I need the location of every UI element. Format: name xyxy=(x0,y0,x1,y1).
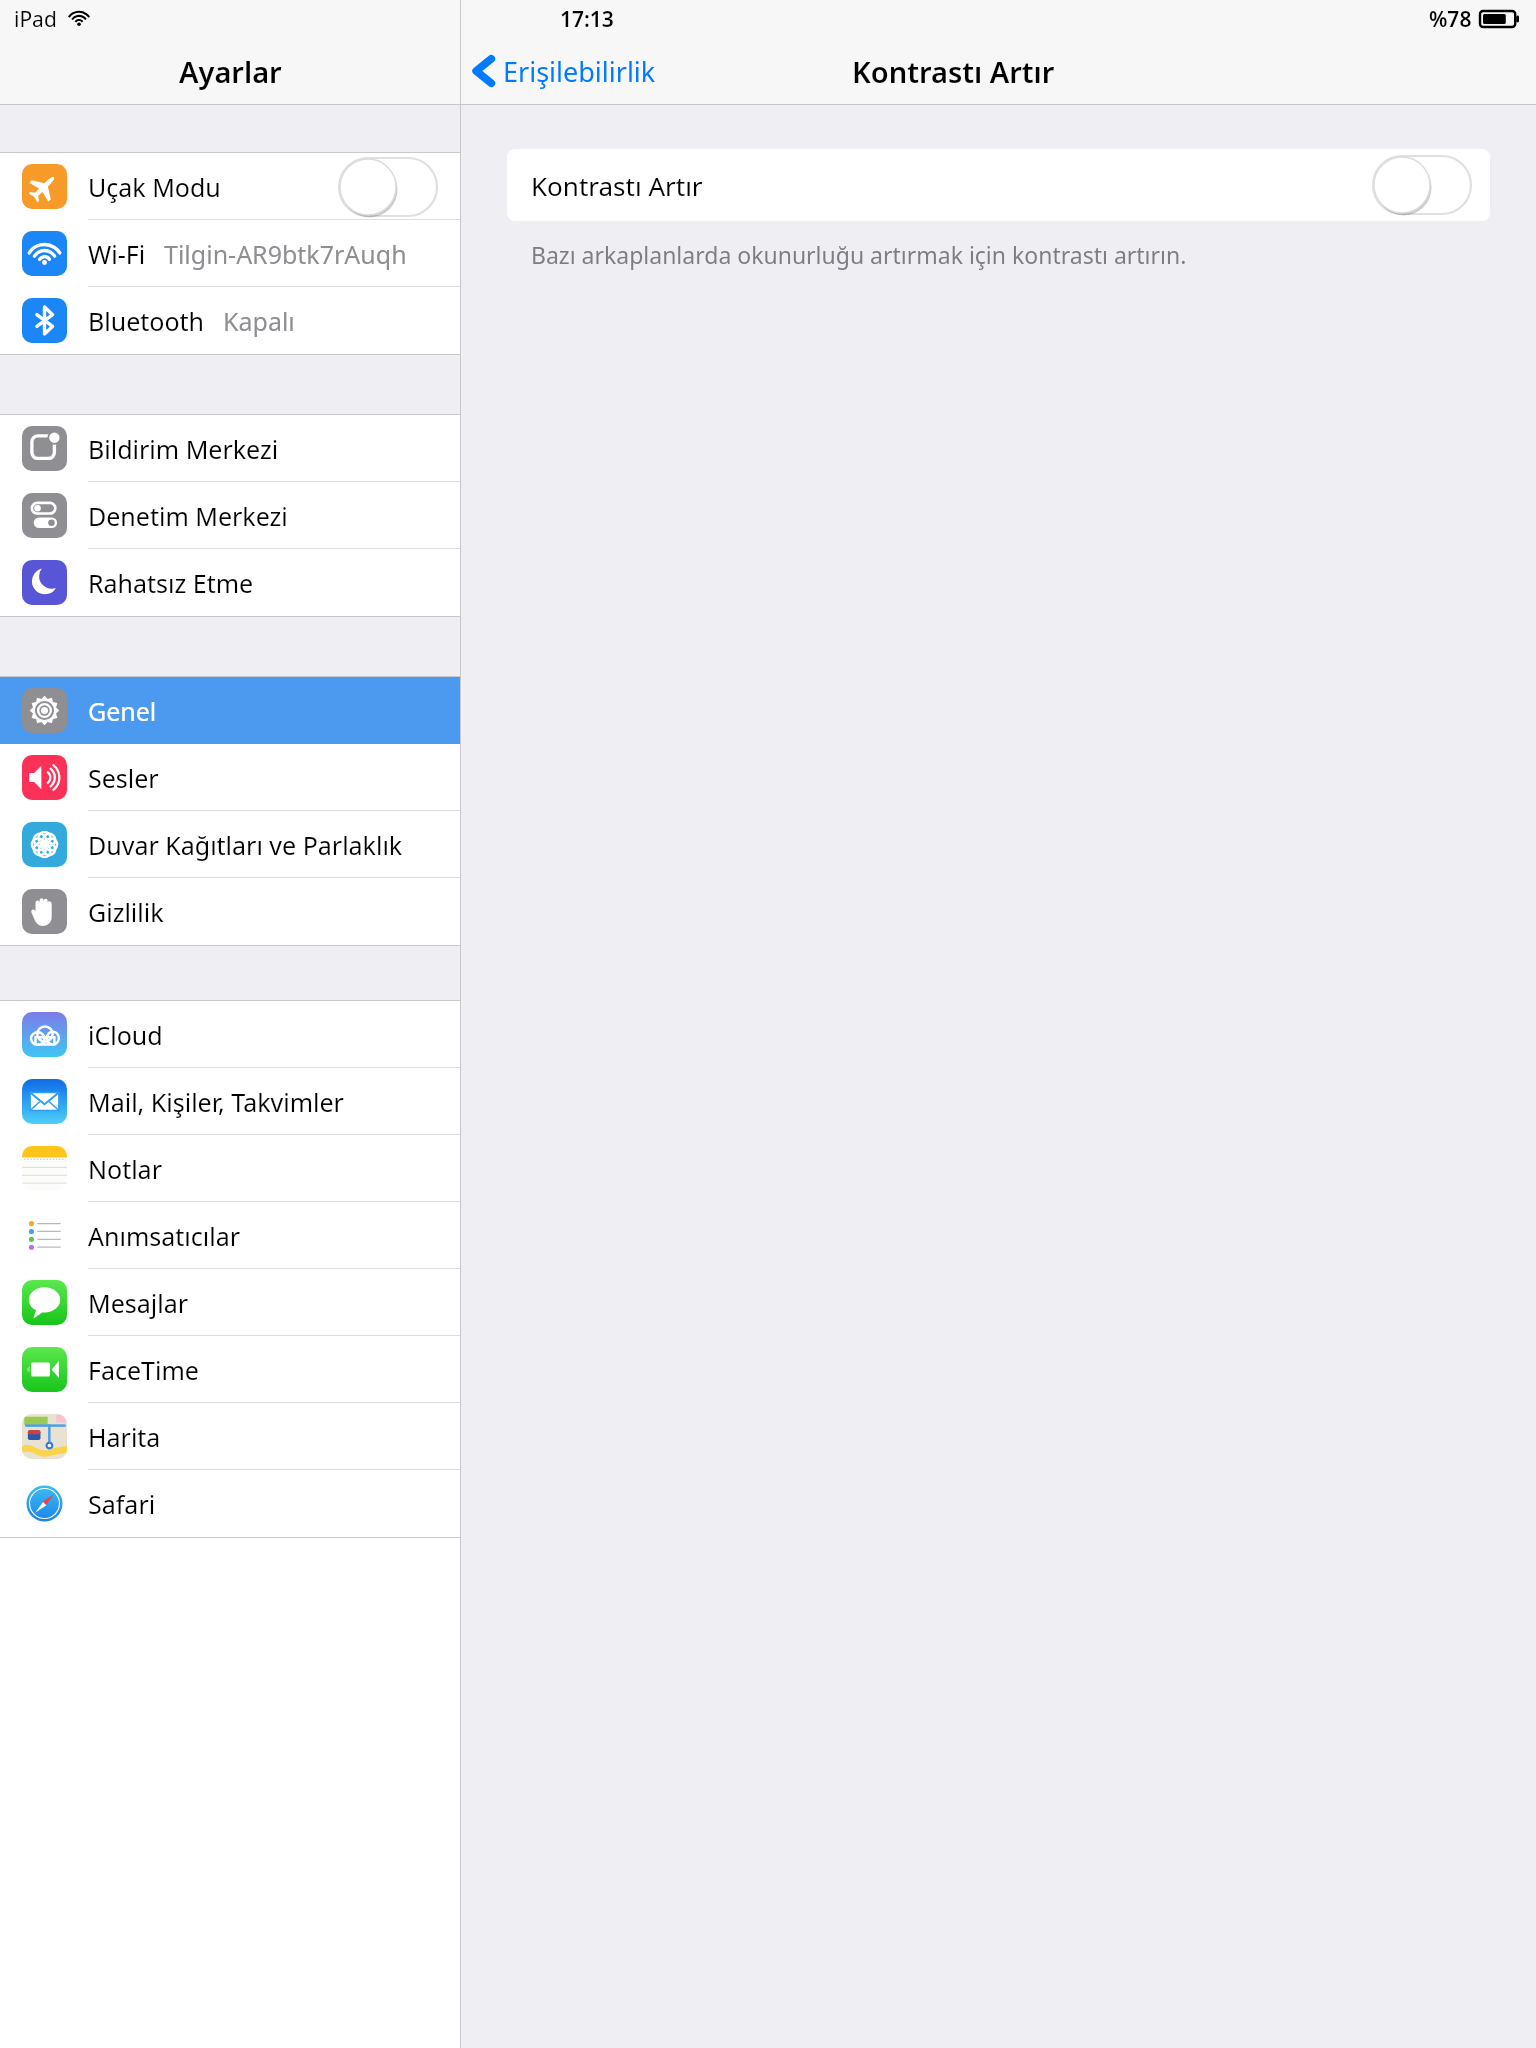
staticText: Denetim Merkezi xyxy=(88,499,288,533)
button[interactable]: Mail, Kişiler, Takvimler xyxy=(0,1068,460,1135)
staticText: Rahatsız Etme xyxy=(88,566,254,600)
button[interactable]: Toggle xyxy=(338,157,438,217)
staticText: Tilgin-AR9btk7rAuqh xyxy=(164,237,407,271)
button[interactable]: Bildirim Merkezi xyxy=(0,415,460,482)
button[interactable]: Harita xyxy=(0,1403,460,1470)
staticText: Gizlilik xyxy=(88,895,164,929)
button[interactable]: Erişilebilirlik xyxy=(471,38,656,104)
staticText: Kontrastı Artır xyxy=(531,168,703,203)
staticText: Kontrastı Artır xyxy=(852,52,1055,91)
staticText: iCloud xyxy=(88,1018,163,1052)
staticText: Genel xyxy=(88,694,157,728)
button[interactable]: Gizlilik xyxy=(0,878,460,945)
button[interactable]: Safari xyxy=(0,1470,460,1537)
button[interactable]: Toggle xyxy=(1372,155,1472,215)
staticText: Duvar Kağıtları ve Parlaklık xyxy=(88,828,403,862)
button[interactable]: Uçak Modu xyxy=(0,153,460,220)
staticText: Notlar xyxy=(88,1152,162,1186)
staticText: Uçak Modu xyxy=(88,170,221,204)
staticText: iPad xyxy=(14,5,57,34)
button[interactable]: Mesajlar xyxy=(0,1269,460,1336)
staticText: Bazı arkaplanlarda okunurluğu artırmak i… xyxy=(531,239,1187,270)
staticText: Bildirim Merkezi xyxy=(88,432,279,466)
staticText: Mail, Kişiler, Takvimler xyxy=(88,1085,344,1119)
staticText: %78 xyxy=(1429,5,1472,34)
button[interactable]: FaceTime xyxy=(0,1336,460,1403)
staticText: 17:13 xyxy=(560,5,614,34)
button[interactable]: iCloud xyxy=(0,1001,460,1068)
staticText: Anımsatıcılar xyxy=(88,1219,240,1253)
staticText: Mesajlar xyxy=(88,1286,189,1320)
button[interactable]: Notlar xyxy=(0,1135,460,1202)
staticText: Kapalı xyxy=(223,304,295,338)
button[interactable]: Kontrastı Artır xyxy=(507,149,1490,221)
staticText: Erişilebilirlik xyxy=(503,53,656,90)
staticText: Harita xyxy=(88,1420,161,1454)
button[interactable]: Rahatsız Etme xyxy=(0,549,460,616)
button[interactable]: Wi-Fi xyxy=(0,220,460,287)
staticText: Bluetooth xyxy=(88,304,205,338)
button[interactable]: Genel xyxy=(0,677,460,744)
staticText: Sesler xyxy=(88,761,159,795)
button[interactable]: Anımsatıcılar xyxy=(0,1202,460,1269)
staticText: Ayarlar xyxy=(179,52,282,91)
button[interactable]: Denetim Merkezi xyxy=(0,482,460,549)
staticText: Safari xyxy=(88,1487,156,1521)
button[interactable]: Bluetooth xyxy=(0,287,460,354)
staticText: Wi-Fi xyxy=(88,237,146,271)
button[interactable]: Sesler xyxy=(0,744,460,811)
button[interactable]: Duvar Kağıtları ve Parlaklık xyxy=(0,811,460,878)
staticText: FaceTime xyxy=(88,1353,199,1387)
